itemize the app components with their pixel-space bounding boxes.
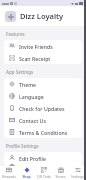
button[interactable]: Change Password [4,164,82,166]
button[interactable]: QR Code [35,166,52,180]
staticText: Rewards [2,174,16,179]
button[interactable]: Terms & Conditions [4,126,82,138]
staticText: Stores [55,174,66,179]
staticText: Theme [19,81,37,88]
staticText: Scan Receipt [19,55,51,62]
staticText: Check for Updates [19,105,65,112]
staticText: Terms & Conditions [19,129,68,136]
staticText: Edit Profile [19,155,46,162]
button[interactable]: Settings [69,166,86,180]
staticText: Invite Friends [19,43,53,50]
staticText: QR Code [37,174,51,179]
button[interactable]: Rewards [0,166,18,180]
staticText: Language [19,93,44,100]
button[interactable]: Language [4,90,82,102]
button[interactable]: Shop [18,166,35,180]
button[interactable]: Check for Updates [4,102,82,114]
staticText: Features [6,31,25,37]
button[interactable]: Edit Profile [4,152,82,164]
staticText: Shop [22,174,31,179]
staticText: Profile Settings [6,143,39,149]
button[interactable]: Invite Friends [4,40,82,52]
staticText: Dizz Loyalty [20,11,64,21]
button[interactable]: Scan Receipt [4,52,82,64]
staticText: Settings [71,174,84,179]
button[interactable]: Theme [4,78,82,90]
staticText: App Settings [6,69,34,75]
button[interactable]: Contact Us [4,114,82,126]
button[interactable]: Stores [52,166,69,180]
staticText: Contact Us [19,117,46,124]
